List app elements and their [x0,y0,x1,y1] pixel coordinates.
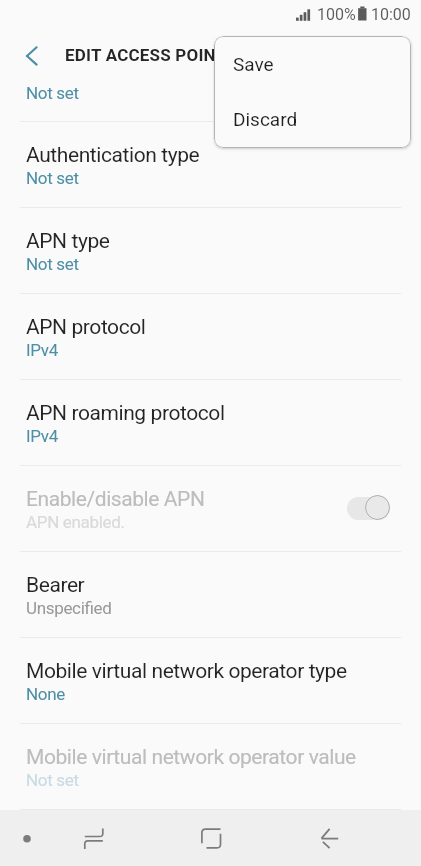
staticText: Authentication type [26,143,200,168]
button[interactable]: Back [306,818,354,858]
button[interactable]: Bearer [0,552,421,637]
staticText: APN type [26,229,110,254]
button[interactable]: Mobile virtual network operator value [0,724,421,809]
staticText: APN roaming protocol [26,401,225,426]
button[interactable]: Show navigation buttons [7,818,47,858]
button[interactable]: APN roaming protocol [0,380,421,465]
staticText: IPv4 [26,340,58,360]
staticText: IPv4 [26,426,58,446]
staticText: Save [233,53,274,75]
staticText: 10:00 [371,5,411,24]
staticText: 100% [317,5,356,24]
button[interactable]: Discard [214,91,411,147]
staticText: None [26,684,65,704]
staticText: Discard [233,108,298,130]
staticText: EDIT ACCESS POINT [65,45,227,65]
button[interactable]: Navigate up [13,37,51,75]
button[interactable]: Authentication type [0,122,421,207]
staticText: Enable/disable APN [26,487,205,512]
staticText: Not set [26,770,79,790]
staticText: Mobile virtual network operator value [26,745,356,770]
button[interactable]: Enable/disable APN [0,466,421,551]
staticText: Not set [26,168,79,188]
staticText: Unspecified [26,598,112,618]
staticText: Not set [26,83,79,103]
button[interactable]: Home [187,818,235,858]
staticText: APN protocol [26,315,146,340]
button[interactable]: Save [214,36,411,91]
staticText: Bearer [26,573,85,598]
staticText: Not set [26,254,79,274]
button[interactable]: Enable/disable APN [347,495,390,522]
button[interactable]: Mobile virtual network operator type [0,638,421,723]
button[interactable]: Recent apps [70,818,118,858]
button[interactable]: APN type [0,208,421,293]
button[interactable]: APN protocol [0,294,421,379]
staticText: Mobile virtual network operator type [26,659,347,684]
staticText: APN enabled. [26,512,125,532]
